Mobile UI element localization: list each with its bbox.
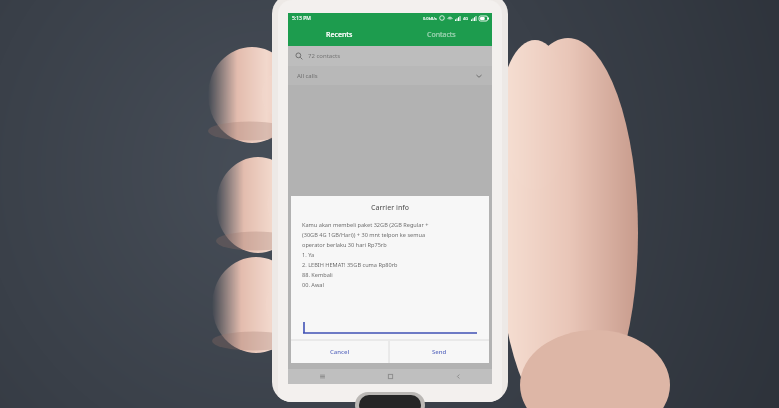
staticText: All calls (297, 72, 318, 80)
staticText: Cancel (330, 348, 350, 356)
other: Search (295, 52, 303, 60)
button[interactable]: Search (288, 46, 492, 66)
button[interactable]: Home (356, 369, 424, 384)
button[interactable]: Contacts (390, 23, 492, 46)
staticText: 00. Awal (302, 281, 324, 289)
button[interactable]: Recent apps (288, 369, 356, 384)
staticText: 0.0kB/s (423, 16, 437, 21)
staticText: 2. LEBIH HEMAT! 35GB cuma Rp80rb (302, 261, 398, 269)
staticText: (30GB 4G 1GB/Hari)) + 30 mnt telpon ke s… (302, 231, 426, 239)
other: Expand (475, 72, 483, 80)
staticText: Carrier info (291, 203, 489, 213)
button[interactable]: Home button (355, 392, 425, 408)
button[interactable] (291, 318, 489, 336)
button[interactable]: Recents (288, 23, 390, 46)
staticText: Send (432, 348, 447, 356)
staticText: 88. Kembali (302, 271, 333, 279)
staticText: 5:13 PM (292, 15, 311, 22)
staticText: operator berlaku 30 hari Rp75rb (302, 241, 387, 249)
button[interactable]: All calls (288, 66, 492, 85)
staticText: 4G (463, 16, 469, 21)
staticText: 1. Ya (302, 251, 315, 259)
staticText: 72 contacts (308, 52, 341, 60)
staticText: Contacts (427, 30, 456, 40)
button[interactable]: Cancel (291, 341, 389, 363)
staticText: Kamu akan membeli paket 32GB (2GB Regula… (302, 221, 429, 229)
button[interactable]: Send (390, 341, 489, 363)
staticText: Recents (326, 30, 353, 40)
